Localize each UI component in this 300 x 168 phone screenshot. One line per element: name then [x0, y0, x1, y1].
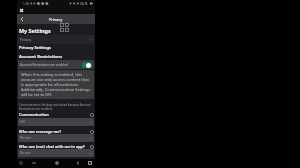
- staticText: No one: [20, 136, 31, 140]
- button[interactable]: Recents: [86, 159, 94, 167]
- staticText: Who can message me?: [19, 129, 62, 134]
- button[interactable]: Privacy: [18, 35, 94, 44]
- other: Info: [90, 145, 94, 149]
- staticText: Account Restrictions are enabled: [20, 63, 68, 67]
- button[interactable]: No one: [18, 149, 94, 157]
- button[interactable]: Who can (not) chat with me in app?: [18, 144, 94, 149]
- button[interactable]: No one: [18, 134, 94, 142]
- staticText: When this setting is enabled, this accou…: [21, 72, 91, 97]
- staticText: Privacy Settings: [19, 45, 51, 50]
- button[interactable]: Accessibility: [17, 159, 25, 167]
- button[interactable]: Off: [18, 118, 94, 126]
- staticText: My Settings: [19, 27, 51, 34]
- staticText: Privacy: [20, 37, 32, 42]
- button[interactable]: Back: [17, 14, 27, 24]
- staticText: 1:46: [23, 2, 30, 6]
- button[interactable]: Account Restrictions are enabled: [18, 60, 94, 69]
- staticText: No one: [20, 151, 31, 155]
- staticText: Who can chat with me?: [19, 158, 63, 163]
- staticText: Who can (not) chat with me in app?: [19, 144, 85, 149]
- button[interactable]: Who can message me?: [18, 129, 94, 134]
- staticText: Privacy: [49, 17, 63, 22]
- button[interactable]: Communication: [18, 112, 94, 117]
- staticText: Communication Settings are locked becaus…: [19, 103, 94, 111]
- button[interactable]: Close: [18, 7, 25, 14]
- staticText: VoLTE: [80, 2, 88, 6]
- button[interactable]: Keyboard: [30, 159, 38, 167]
- button[interactable]: Scan QR code: [60, 23, 68, 30]
- staticText: Off: [20, 120, 25, 124]
- staticText: Communication: [19, 112, 49, 117]
- button[interactable]: Who can chat with me?: [18, 158, 94, 163]
- staticText: Account Restrictions: [19, 54, 63, 60]
- other: Info: [90, 130, 94, 134]
- button[interactable]: Back: [74, 159, 82, 167]
- other: Info: [90, 159, 94, 163]
- other: Info: [90, 113, 94, 117]
- button[interactable]: Home: [53, 159, 61, 167]
